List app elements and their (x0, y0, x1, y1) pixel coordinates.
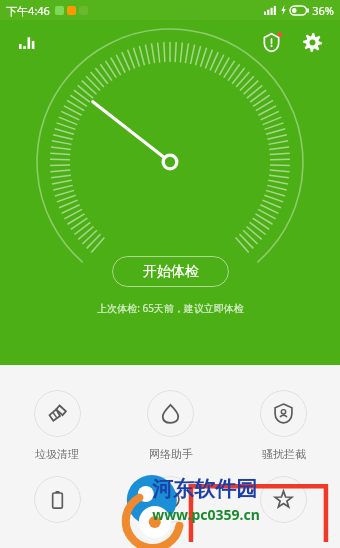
button[interactable]: Statistics (11, 26, 43, 58)
button[interactable]: Favourites (227, 476, 340, 523)
staticText: 河东软件园 (152, 476, 257, 502)
staticText: 网络助手 (149, 447, 193, 461)
staticText: 开始体检 (143, 263, 199, 281)
button[interactable]: 骚扰拦截 (227, 390, 340, 461)
button[interactable]: 垃圾清理 (0, 390, 114, 461)
staticText: www.pc0359.cn (152, 505, 260, 524)
staticText: 上次体检: 65天前，建议立即体检 (97, 301, 244, 315)
button[interactable]: 开始体检 (112, 256, 229, 287)
button[interactable]: Settings (295, 25, 329, 59)
button[interactable]: Boost (114, 476, 227, 523)
button[interactable]: Security alerts (254, 25, 288, 59)
staticText: 36% (312, 3, 334, 18)
staticText: 垃圾清理 (35, 447, 79, 461)
button[interactable]: Battery saver (0, 476, 114, 523)
staticText: 骚扰拦截 (262, 447, 306, 461)
button[interactable]: 网络助手 (114, 390, 227, 461)
staticText: 下午4:46 (6, 3, 50, 18)
